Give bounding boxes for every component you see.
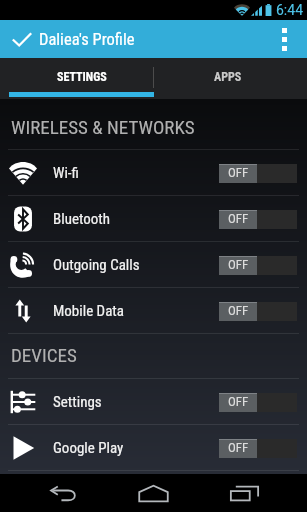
button[interactable]: APPS — [154, 58, 307, 99]
button[interactable]: Up — [0, 20, 39, 58]
button[interactable]: Google Play — [0, 425, 307, 471]
button[interactable]: Toggle off — [219, 256, 297, 275]
button[interactable]: Recent apps — [199, 474, 290, 512]
button[interactable]: Toggle off — [219, 439, 297, 458]
staticText: Mobile Data — [53, 302, 124, 320]
staticText: OFF — [228, 257, 249, 272]
button[interactable]: Toggle off — [219, 210, 297, 229]
button[interactable]: More options — [262, 20, 307, 58]
button[interactable]: Toggle off — [219, 164, 297, 183]
staticText: DEVICES — [11, 344, 77, 366]
staticText: Settings — [53, 393, 102, 411]
staticText: Bluetooth — [53, 210, 110, 228]
staticText: APPS — [214, 70, 242, 84]
staticText: OFF — [228, 440, 249, 455]
staticText: OFF — [228, 211, 249, 226]
staticText: OFF — [228, 394, 249, 409]
staticText: Outgoing Calls — [53, 256, 140, 274]
staticText: Wi-fi — [53, 164, 79, 182]
button[interactable]: Back — [17, 474, 108, 512]
button[interactable]: Wi-fi — [0, 150, 307, 196]
staticText: OFF — [228, 165, 249, 180]
button[interactable]: Toggle off — [219, 302, 297, 321]
button[interactable]: Settings — [0, 379, 307, 425]
staticText: 6:44 — [276, 2, 303, 18]
button[interactable]: Home — [108, 474, 199, 512]
button[interactable]: Outgoing Calls — [0, 242, 307, 288]
staticText: SETTINGS — [57, 70, 107, 84]
staticText: OFF — [228, 303, 249, 318]
staticText: Google Play — [53, 439, 124, 457]
button[interactable]: Bluetooth — [0, 196, 307, 242]
staticText: WIRELESS & NETWORKS — [11, 116, 195, 138]
button[interactable]: Mobile Data — [0, 288, 307, 334]
staticText: Daliea's Profile — [39, 30, 135, 49]
button[interactable]: SETTINGS — [0, 58, 154, 99]
button[interactable]: Toggle off — [219, 393, 297, 412]
